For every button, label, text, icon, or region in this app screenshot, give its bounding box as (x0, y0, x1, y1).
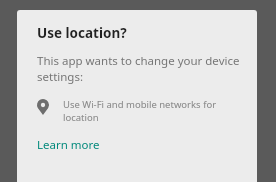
other: Location (37, 99, 49, 115)
staticText: Use Wi-Fi and mobile networks for locati… (63, 98, 223, 124)
staticText: This app wants to change your device set… (37, 53, 241, 85)
staticText: Use location? (37, 24, 127, 42)
button[interactable]: Learn more (37, 136, 104, 154)
staticText: Learn more (37, 137, 100, 153)
